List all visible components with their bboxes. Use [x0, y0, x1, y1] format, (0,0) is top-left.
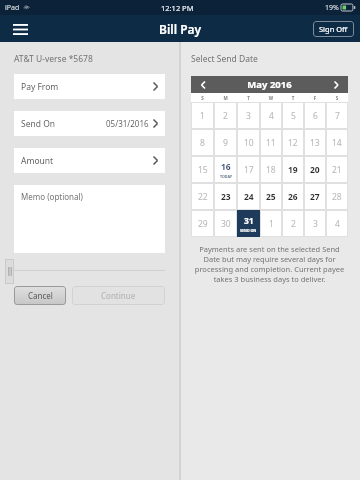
- staticText: 16: [221, 161, 231, 173]
- button[interactable]: Menu: [9, 18, 31, 40]
- staticText: 22: [198, 191, 208, 203]
- staticText: M: [214, 95, 237, 101]
- staticText: TODAY: [220, 174, 232, 179]
- staticText: 3: [246, 110, 251, 122]
- staticText: iPad: [5, 3, 20, 13]
- staticText: F: [304, 95, 326, 101]
- staticText: Amount: [21, 155, 54, 167]
- staticText: Cancel: [28, 290, 53, 301]
- button: 10: [237, 129, 260, 156]
- staticText: 5: [291, 110, 296, 122]
- staticText: S: [191, 95, 214, 101]
- staticText: Payments are sent on the selected Send D…: [193, 244, 346, 284]
- button[interactable]: Drag handle: [5, 259, 14, 284]
- staticText: T: [282, 95, 304, 101]
- staticText: 24: [244, 191, 254, 203]
- button[interactable]: 16: [214, 156, 237, 183]
- staticText: 9: [223, 137, 228, 149]
- staticText: 6: [313, 110, 318, 122]
- button: 15: [191, 156, 214, 183]
- staticText: 11: [266, 137, 276, 149]
- button[interactable]: 26: [282, 183, 304, 210]
- staticText: 7: [335, 110, 340, 122]
- button: 1: [191, 102, 214, 129]
- button: 21: [326, 156, 348, 183]
- staticText: 1: [269, 218, 274, 230]
- button: 2: [214, 102, 237, 129]
- staticText: 13: [310, 137, 320, 149]
- button: 14: [326, 129, 348, 156]
- button[interactable]: 27: [304, 183, 326, 210]
- staticText: 29: [198, 218, 208, 230]
- staticText: 19%: [325, 3, 339, 13]
- staticText: 26: [288, 191, 298, 203]
- staticText: 05/31/2016: [106, 118, 149, 129]
- button: 17: [237, 156, 260, 183]
- button: 11: [260, 129, 282, 156]
- staticText: May 2016: [215, 78, 324, 91]
- staticText: T: [237, 95, 260, 101]
- button: 5: [282, 102, 304, 129]
- staticText: 19: [288, 164, 298, 176]
- button[interactable]: Memo (optional): [14, 185, 165, 253]
- staticText: Select Send Date: [191, 53, 258, 65]
- button: 29: [191, 210, 214, 237]
- button: 2: [282, 210, 304, 237]
- button[interactable]: Cancel: [14, 286, 66, 305]
- staticText: S: [326, 95, 348, 101]
- button: 1: [260, 210, 282, 237]
- staticText: 31: [244, 215, 254, 227]
- staticText: 21: [332, 164, 342, 176]
- staticText: 4: [335, 218, 340, 230]
- button[interactable]: 31: [237, 210, 260, 237]
- staticText: Sign Off: [319, 24, 348, 34]
- button: 3: [304, 210, 326, 237]
- button[interactable]: Pay From: [14, 74, 165, 99]
- staticText: 17: [244, 164, 254, 176]
- button: 28: [326, 183, 348, 210]
- staticText: 14: [332, 137, 342, 149]
- staticText: 18: [266, 164, 276, 176]
- staticText: W: [260, 95, 282, 101]
- button: 7: [326, 102, 348, 129]
- staticText: 12: [288, 137, 298, 149]
- staticText: 3: [313, 218, 318, 230]
- button: 13: [304, 129, 326, 156]
- button: 12: [282, 129, 304, 156]
- staticText: 10: [244, 137, 254, 149]
- button: 4: [260, 102, 282, 129]
- button[interactable]: Continue: [72, 286, 165, 305]
- staticText: 1: [200, 110, 205, 122]
- button: 3: [237, 102, 260, 129]
- button[interactable]: 19: [282, 156, 304, 183]
- button: 9: [214, 129, 237, 156]
- staticText: 25: [266, 191, 276, 203]
- staticText: Continue: [101, 290, 136, 301]
- staticText: SEND ON: [240, 228, 257, 233]
- staticText: 2: [223, 110, 228, 122]
- staticText: 12:12 PM: [161, 3, 194, 13]
- button[interactable]: 25: [260, 183, 282, 210]
- staticText: 27: [310, 191, 320, 203]
- staticText: Send On: [21, 118, 56, 130]
- button[interactable]: Send On: [14, 111, 165, 136]
- button: 8: [191, 129, 214, 156]
- button[interactable]: Sign Off: [313, 21, 354, 37]
- staticText: Bill Pay: [159, 21, 202, 37]
- staticText: 28: [332, 191, 342, 203]
- button[interactable]: 20: [304, 156, 326, 183]
- button: 6: [304, 102, 326, 129]
- button[interactable]: Amount: [14, 148, 165, 173]
- button[interactable]: Next month: [324, 76, 348, 93]
- staticText: 23: [221, 191, 231, 203]
- staticText: 2: [291, 218, 296, 230]
- staticText: 15: [198, 164, 208, 176]
- button[interactable]: 24: [237, 183, 260, 210]
- staticText: AT&T U-verse *5678: [14, 53, 93, 65]
- button: 30: [214, 210, 237, 237]
- staticText: 8: [200, 137, 205, 149]
- button[interactable]: 23: [214, 183, 237, 210]
- button[interactable]: Previous month: [191, 76, 215, 93]
- staticText: 20: [310, 164, 320, 176]
- staticText: 30: [221, 218, 231, 230]
